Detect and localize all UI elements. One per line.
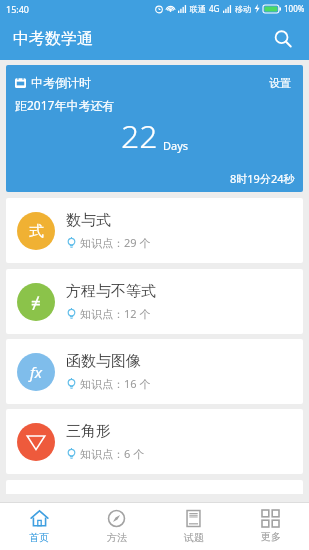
staticText: 距2017年中考还有 bbox=[15, 97, 115, 113]
button[interactable]: 中考倒计时 bbox=[6, 65, 303, 192]
button[interactable]: 首页 bbox=[0, 503, 78, 550]
staticText: Days bbox=[163, 138, 189, 153]
staticText: 式 bbox=[29, 222, 44, 241]
button[interactable]: Search bbox=[265, 21, 301, 57]
staticText: 15:40 bbox=[6, 3, 30, 15]
staticText: 试题 bbox=[184, 531, 204, 544]
button[interactable]: 三角形 bbox=[6, 409, 303, 474]
staticText: 移动 bbox=[235, 4, 251, 14]
staticText: 数与式 bbox=[66, 211, 111, 230]
staticText: 中考倒计时 bbox=[31, 75, 91, 90]
staticText: 知识点：16 个 bbox=[80, 376, 151, 391]
staticText: 设置 bbox=[269, 76, 291, 90]
staticText: fx bbox=[30, 362, 43, 382]
staticText: ≠ bbox=[31, 291, 41, 314]
button[interactable]: 设置 bbox=[261, 69, 299, 97]
button[interactable]: ≠ bbox=[6, 269, 303, 334]
button[interactable]: 更多 bbox=[232, 503, 309, 550]
staticText: 知识点：6 个 bbox=[80, 446, 145, 461]
button[interactable]: 试题 bbox=[155, 503, 232, 550]
staticText: 联通 bbox=[190, 4, 206, 14]
staticText: 4G bbox=[209, 3, 220, 14]
staticText: 知识点：12 个 bbox=[80, 306, 151, 321]
button[interactable]: fx bbox=[6, 339, 303, 404]
staticText: 知识点：29 个 bbox=[80, 235, 151, 250]
button[interactable]: 方法 bbox=[78, 503, 155, 550]
staticText: 更多 bbox=[261, 530, 281, 543]
staticText: 22 bbox=[121, 114, 158, 158]
staticText: 三角形 bbox=[66, 422, 111, 441]
button[interactable]: 式 bbox=[6, 198, 303, 263]
staticText: 方法 bbox=[107, 531, 127, 544]
staticText: 中考数学通 bbox=[13, 29, 93, 49]
staticText: 方程与不等式 bbox=[66, 282, 156, 301]
staticText: 8时19分24秒 bbox=[230, 171, 295, 186]
staticText: 100% bbox=[284, 3, 305, 14]
staticText: 函数与图像 bbox=[66, 352, 141, 371]
staticText: 首页 bbox=[29, 531, 49, 544]
